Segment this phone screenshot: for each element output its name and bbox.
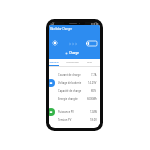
- staticText: Voltage de batterie: [58, 81, 82, 85]
- button[interactable]: Général: [49, 59, 63, 67]
- staticText: 18.0V: [90, 118, 97, 122]
- staticText: Courant de charge: [58, 73, 81, 77]
- button[interactable]: Tension PV: [49, 116, 100, 124]
- staticText: Tension PV: [58, 118, 72, 122]
- staticText: 14.29V: [88, 81, 97, 85]
- other: Battery: [86, 41, 97, 46]
- other: Solar panel: [51, 39, 59, 47]
- button[interactable]: Courant de charge: [49, 71, 100, 79]
- button[interactable]: Capacité de charge: [49, 87, 100, 95]
- staticText: 80%: [91, 89, 97, 93]
- staticText: 6000Wh: [87, 97, 97, 101]
- staticText: Général: [49, 60, 59, 63]
- button[interactable]: Energie chargée: [49, 95, 100, 103]
- staticText: Energie chargée: [58, 97, 78, 101]
- staticText: Historique: [66, 60, 79, 63]
- staticText: 124W: [90, 110, 97, 114]
- staticText: Puissance PV: [58, 110, 74, 114]
- button[interactable]: Etat: [81, 59, 97, 67]
- staticText: 7.7A: [91, 73, 97, 77]
- staticText: Capacité de charge: [58, 89, 82, 93]
- button[interactable]: Historique: [63, 59, 81, 67]
- button[interactable]: Voltage de batterie: [49, 79, 100, 87]
- staticText: Charge: [69, 51, 79, 55]
- button[interactable]: Puissance PV: [49, 108, 100, 116]
- staticText: Etat: [87, 60, 92, 63]
- staticText: BlueSolar Charger: [50, 27, 73, 31]
